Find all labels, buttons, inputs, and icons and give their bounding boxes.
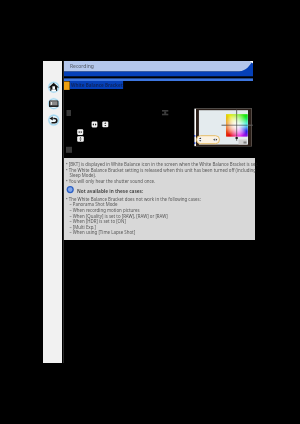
button[interactable]: Back: [48, 114, 60, 126]
staticText: – When using [Time Lapse Shot]: [66, 229, 136, 235]
staticText: – [Multi Exp.]: [66, 224, 96, 230]
staticText: Recording: [70, 63, 94, 70]
staticText: • You will only hear the shutter sound o…: [66, 178, 156, 184]
staticText: • The White Balance Bracket setting is r…: [66, 167, 256, 173]
staticText: Not available in these cases:: [77, 188, 144, 194]
staticText: – When [Quality] is set to [RAW], [RAW] …: [66, 213, 168, 219]
staticText: – Panorama Shot Mode: [66, 201, 118, 207]
staticText: – When recording motion pictures: [66, 207, 140, 213]
button[interactable]: Section heading: [64, 81, 123, 90]
button[interactable]: Contents: [48, 98, 60, 110]
staticText: • The White Balance Bracket does not wor…: [66, 196, 201, 202]
staticText: Sleep Mode).: [66, 172, 97, 178]
button[interactable]: Home: [48, 81, 60, 93]
staticText: White Balance Bracket: [71, 82, 123, 88]
staticText: – When [HDR] is set to [ON]: [66, 218, 126, 224]
staticText: • [BKT] is displayed in White Balance ic…: [66, 161, 259, 167]
